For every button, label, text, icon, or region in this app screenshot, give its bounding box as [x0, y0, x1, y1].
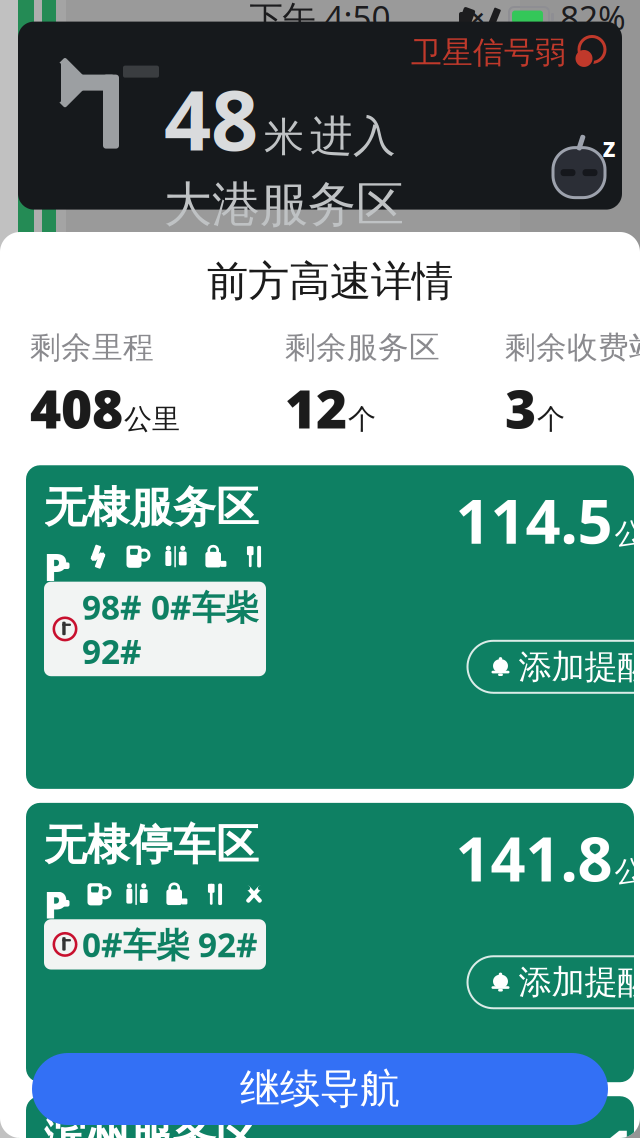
staticText: 个	[348, 402, 376, 436]
staticText: 米	[264, 113, 304, 162]
staticText: 408	[30, 372, 123, 443]
staticText: 无棣停车区	[44, 819, 259, 871]
staticText: 172.2	[601, 1110, 640, 1138]
staticText: 0#车柴 92#	[82, 922, 258, 967]
staticText: 114.5	[455, 479, 612, 561]
staticText: 12	[285, 372, 347, 443]
staticText: 3	[505, 372, 536, 443]
staticText: 48	[164, 64, 258, 173]
staticText: 卫星信号弱	[411, 34, 566, 71]
button[interactable]: 添加提醒	[467, 956, 640, 1008]
staticText: 82%	[560, 0, 626, 39]
button[interactable]: 继续导航	[32, 1053, 608, 1125]
staticText: 添加提醒	[518, 646, 640, 687]
staticText: 公里	[614, 854, 640, 890]
staticText: 继续导航	[240, 1064, 400, 1113]
staticText: P	[44, 542, 68, 591]
button[interactable]: 无棣服务区	[26, 465, 634, 789]
staticText: 下午 4:50	[249, 0, 390, 39]
button[interactable]: 无棣停车区	[26, 803, 634, 1082]
staticText: 141.8	[455, 817, 612, 898]
staticText: 剩余收费站	[505, 329, 640, 366]
staticText: 大港服务区	[164, 175, 404, 234]
staticText: 前方高速详情	[207, 256, 453, 307]
staticText: 个	[537, 402, 565, 436]
staticText: P	[44, 879, 68, 929]
staticText: 滨州服务区	[44, 1112, 259, 1138]
staticText: 剩余里程	[30, 329, 154, 366]
staticText: 剩余服务区	[285, 329, 440, 366]
staticText: 公里	[614, 516, 640, 552]
button[interactable]: 滨州服务区	[26, 1096, 634, 1138]
staticText: 98# 0#车柴 92#	[82, 585, 258, 673]
staticText: 公里	[124, 402, 180, 436]
staticText: z	[602, 129, 615, 164]
staticText: 进入	[310, 110, 396, 163]
button[interactable]: 添加提醒	[467, 641, 640, 693]
staticText: ×	[471, 1, 485, 33]
staticText: 无棣服务区	[44, 481, 259, 534]
staticText: 添加提醒	[518, 962, 640, 1003]
